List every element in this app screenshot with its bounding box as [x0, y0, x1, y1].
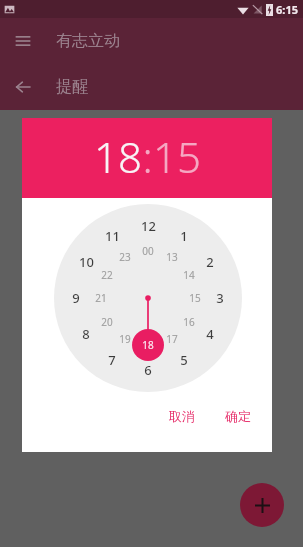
staticText: 4: [206, 325, 214, 343]
staticText: 7: [108, 351, 116, 369]
button[interactable]: 18: [94, 128, 142, 185]
staticText: 00: [142, 244, 154, 258]
staticText: 确定: [225, 408, 251, 424]
staticText: 19: [119, 332, 131, 346]
staticText: 18: [94, 128, 142, 185]
button[interactable]: Clock face, 18 selected: [54, 204, 242, 392]
staticText: 有志立动: [56, 31, 120, 51]
staticText: 2: [206, 253, 214, 271]
staticText: 18: [142, 338, 154, 352]
staticText: 10: [79, 253, 94, 271]
staticText: 9: [72, 289, 80, 307]
staticText: 11: [105, 227, 120, 245]
staticText: 23: [119, 250, 131, 264]
staticText: 20: [101, 315, 113, 329]
staticText: 16: [183, 315, 195, 329]
button[interactable]: 15: [153, 128, 201, 185]
staticText: 13: [166, 250, 178, 264]
staticText: 8: [82, 325, 90, 343]
staticText: 14: [183, 268, 195, 282]
staticText: 22: [101, 268, 113, 282]
staticText: 6:15: [276, 2, 298, 17]
button[interactable]: 确定: [216, 402, 260, 430]
staticText: 15: [189, 291, 201, 305]
staticText: 1: [180, 227, 188, 245]
staticText: 12: [141, 217, 156, 235]
button[interactable]: Back: [7, 71, 39, 103]
staticText: 提醒: [56, 77, 88, 97]
staticText: 取消: [169, 408, 195, 424]
staticText: 3: [216, 289, 224, 307]
staticText: :: [142, 128, 153, 185]
staticText: 17: [166, 332, 178, 346]
staticText: 21: [95, 291, 107, 305]
button[interactable]: 取消: [160, 402, 204, 430]
staticText: 5: [180, 351, 188, 369]
button[interactable]: Add: [240, 483, 284, 527]
button[interactable]: Menu: [7, 25, 39, 57]
staticText: 6: [144, 361, 152, 379]
staticText: 15: [153, 128, 201, 185]
